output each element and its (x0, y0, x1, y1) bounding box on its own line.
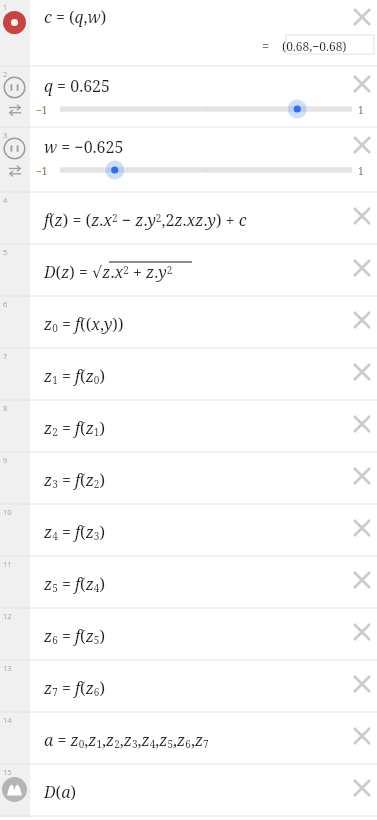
button[interactable]: Change animation direction (5, 161, 25, 181)
staticText: z3 = f(z2) (44, 469, 105, 491)
button[interactable]: Delete expression (347, 721, 377, 751)
staticText: 14 (3, 715, 12, 725)
staticText: z0 = f((x,y)) (44, 313, 124, 335)
staticText: 3 (3, 130, 8, 140)
button[interactable]: 6 (0, 297, 377, 349)
button[interactable]: Delete expression (347, 253, 377, 283)
button[interactable]: Play slider animation (3, 137, 26, 160)
staticText: z5 = f(z4) (44, 573, 105, 595)
staticText: = (262, 37, 270, 55)
button[interactable]: Play slider animation (3, 76, 26, 99)
staticText: 1 (3, 2, 8, 12)
staticText: f(z) = (z.x2 − z.y2,2z.xz.y) + c (44, 209, 247, 231)
button[interactable]: 12 (0, 609, 377, 661)
staticText: D(a) (44, 781, 76, 803)
button[interactable]: Toggle point visibility (3, 11, 26, 34)
staticText: z6 = f(z5) (44, 625, 105, 647)
button[interactable]: 1 (0, 0, 377, 67)
staticText: 13 (3, 663, 12, 673)
staticText: 15 (3, 767, 12, 777)
button[interactable]: Delete expression (347, 130, 377, 160)
button[interactable]: 11 (0, 557, 377, 609)
staticText: 5 (3, 247, 8, 257)
button[interactable]: 4 (0, 193, 377, 245)
staticText: z2 = f(z1) (44, 417, 105, 439)
staticText: 7 (3, 351, 8, 361)
button[interactable]: Delete expression (347, 565, 377, 595)
button[interactable]: Delete expression (347, 69, 377, 99)
button[interactable]: Delete expression (347, 305, 377, 335)
staticText: 2 (3, 69, 8, 79)
button[interactable]: 3 (0, 128, 377, 193)
staticText: 9 (3, 455, 8, 465)
staticText: −1 (36, 164, 48, 178)
button[interactable]: 7 (0, 349, 377, 401)
staticText: z1 = f(z0) (44, 365, 105, 387)
staticText: q = 0.625 (44, 75, 111, 97)
staticText: c = (q,w) (44, 6, 107, 28)
staticText: w = −0.625 (44, 136, 124, 158)
staticText: 1 (358, 164, 364, 178)
button[interactable]: Slider (0, 99, 377, 119)
staticText: (0.68,−0.68) (282, 38, 347, 54)
button[interactable]: 10 (0, 505, 377, 557)
button[interactable]: Slider (0, 160, 377, 180)
staticText: z4 = f(z3) (44, 521, 105, 543)
button[interactable]: Change animation direction (5, 100, 25, 120)
button[interactable]: Delete expression (347, 773, 377, 803)
button[interactable]: Show graph (2, 777, 27, 802)
button[interactable]: Delete expression (347, 461, 377, 491)
button[interactable]: 8 (0, 401, 377, 453)
staticText: 10 (3, 507, 12, 517)
button[interactable]: 15 (0, 765, 377, 817)
staticText: 12 (3, 611, 12, 621)
button[interactable]: 9 (0, 453, 377, 505)
staticText: D(z) = √z.x2 + z.y2 (44, 261, 173, 283)
staticText: 4 (3, 195, 8, 205)
staticText: 1 (358, 103, 364, 117)
button[interactable]: 2 (0, 67, 377, 128)
button[interactable]: Delete expression (347, 669, 377, 699)
button[interactable]: Delete expression (347, 201, 377, 231)
button[interactable]: Delete expression (347, 513, 377, 543)
button[interactable]: 13 (0, 661, 377, 713)
staticText: 8 (3, 403, 8, 413)
staticText: a = z0,z1,z2,z3,z4,z5,z6,z7 (44, 729, 209, 751)
staticText: 11 (3, 559, 12, 569)
button[interactable]: 14 (0, 713, 377, 765)
button[interactable]: Delete expression (347, 2, 377, 32)
staticText: z7 = f(z6) (44, 677, 105, 699)
button[interactable]: Delete expression (347, 409, 377, 439)
staticText: −1 (36, 103, 48, 117)
button[interactable]: Delete expression (347, 357, 377, 387)
button[interactable]: 5 (0, 245, 377, 297)
staticText: 6 (3, 299, 8, 309)
button[interactable]: Delete expression (347, 617, 377, 647)
